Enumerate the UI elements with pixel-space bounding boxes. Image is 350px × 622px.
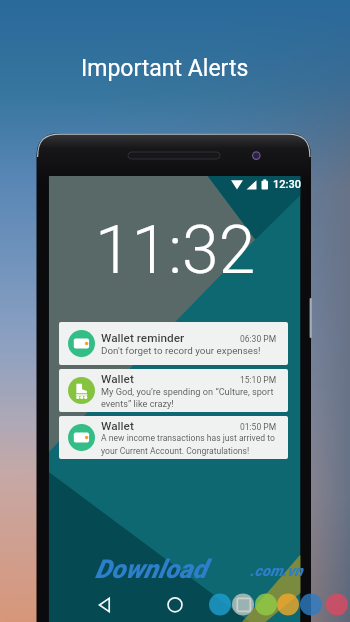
staticText: My God, you’re spending on “Culture, spo… — [101, 386, 283, 409]
staticText: A new income transactions has just arriv… — [101, 433, 283, 456]
staticText: 06:30 PM — [240, 334, 277, 344]
staticText: 01:50 PM — [240, 422, 277, 432]
button[interactable]: Wallet — [59, 416, 288, 459]
staticText: Important Alerts — [81, 55, 249, 82]
staticText: Download — [95, 554, 207, 584]
staticText: Wallet reminder — [101, 331, 185, 345]
staticText: Don't forget to record your expenses! — [101, 345, 261, 356]
staticText: .com.vn — [250, 562, 303, 580]
button[interactable]: Back — [95, 595, 115, 615]
button[interactable]: Wallet reminder — [59, 322, 288, 365]
staticText: Wallet — [101, 419, 134, 433]
button[interactable]: Recent apps — [234, 595, 254, 615]
button[interactable]: Home — [165, 595, 185, 615]
button[interactable]: Wallet — [59, 369, 288, 412]
staticText: Wallet — [101, 372, 134, 386]
staticText: 15:10 PM — [240, 375, 277, 385]
staticText: 12:30 — [273, 178, 301, 191]
staticText: 11:32 — [95, 212, 256, 289]
